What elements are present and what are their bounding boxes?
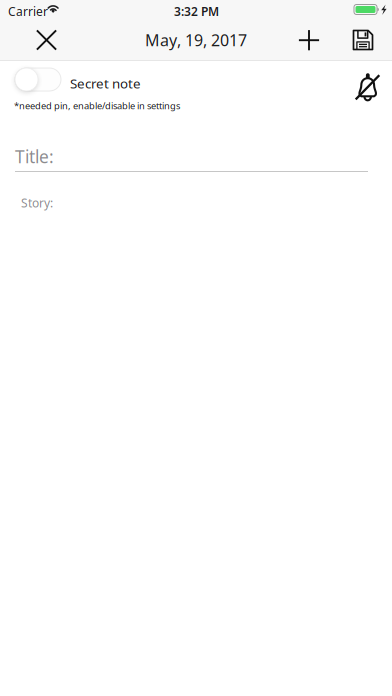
staticText: 3:32 PM: [174, 3, 219, 19]
button[interactable]: Save: [343, 20, 383, 60]
staticText: *needed pin, enable/disable in settings: [14, 99, 180, 112]
staticText: Story:: [21, 195, 53, 211]
staticText: Carrier: [8, 3, 48, 19]
button[interactable]: Secret note: [15, 68, 61, 91]
button[interactable]: New note: [287, 20, 331, 60]
button[interactable]: Notifications off: [355, 72, 380, 101]
button[interactable]: Close: [23, 20, 70, 60]
staticText: Secret note: [70, 74, 141, 92]
staticText: May, 19, 2017: [145, 29, 247, 51]
staticText: Title:: [15, 145, 54, 168]
